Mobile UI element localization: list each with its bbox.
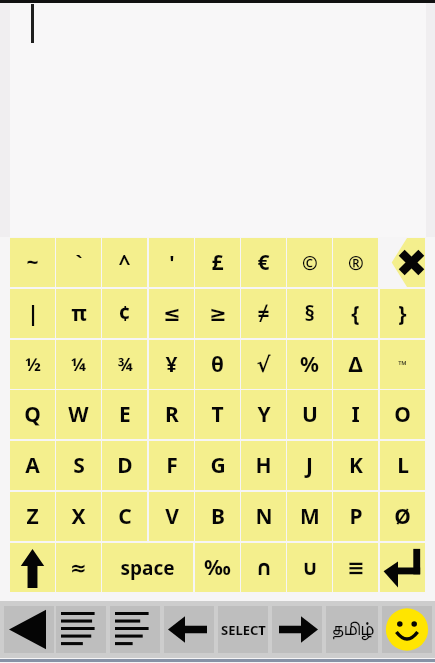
staticText: ∪ bbox=[301, 556, 319, 580]
staticText: ™ bbox=[398, 357, 407, 372]
button[interactable]: ¾ bbox=[102, 340, 147, 389]
button[interactable]: B bbox=[195, 492, 240, 541]
button[interactable]: ™ bbox=[380, 340, 425, 389]
button[interactable]: S bbox=[56, 441, 101, 490]
button[interactable]: ∪ bbox=[287, 543, 332, 592]
button[interactable]: Previous bbox=[4, 606, 54, 653]
button[interactable]: ¼ bbox=[56, 340, 101, 389]
button[interactable]: U bbox=[287, 390, 332, 439]
staticText: € bbox=[257, 248, 270, 277]
staticText: π bbox=[71, 299, 87, 328]
staticText: J bbox=[306, 451, 313, 480]
button[interactable]: Justify bbox=[56, 606, 106, 653]
staticText: ¾ bbox=[117, 352, 133, 377]
button[interactable]: V bbox=[149, 492, 194, 541]
button[interactable]: | bbox=[10, 289, 55, 338]
staticText: M bbox=[300, 502, 320, 531]
button[interactable]: T bbox=[195, 390, 240, 439]
staticText: { bbox=[351, 299, 360, 328]
staticText: தமிழ் bbox=[331, 620, 374, 639]
button[interactable]: } bbox=[380, 289, 425, 338]
button[interactable]: { bbox=[333, 289, 378, 338]
staticText: ' bbox=[169, 249, 175, 276]
button[interactable]: Tamil bbox=[326, 606, 378, 653]
button[interactable]: Align left bbox=[110, 606, 160, 653]
button[interactable]: K bbox=[333, 441, 378, 490]
staticText: D bbox=[117, 451, 133, 480]
button[interactable]: ` bbox=[56, 238, 101, 287]
button[interactable]: © bbox=[287, 238, 332, 287]
button[interactable]: ‰ bbox=[195, 543, 240, 592]
button[interactable]: P bbox=[333, 492, 378, 541]
button[interactable]: Move right bbox=[272, 606, 322, 653]
staticText: % bbox=[300, 350, 319, 379]
button[interactable]: ' bbox=[149, 238, 194, 287]
button[interactable]: ¥ bbox=[149, 340, 194, 389]
button[interactable]: θ bbox=[195, 340, 240, 389]
button[interactable]: € bbox=[241, 238, 286, 287]
staticText: ~ bbox=[26, 248, 39, 277]
button[interactable]: W bbox=[56, 390, 101, 439]
staticText: space bbox=[120, 555, 175, 581]
button[interactable]: § bbox=[287, 289, 332, 338]
staticText: ¼ bbox=[71, 352, 86, 377]
staticText: Z bbox=[26, 502, 39, 531]
button[interactable]: Select bbox=[218, 606, 268, 653]
button[interactable]: J bbox=[287, 441, 332, 490]
button[interactable]: ® bbox=[333, 238, 378, 287]
button[interactable]: ~ bbox=[10, 238, 55, 287]
button[interactable]: M bbox=[287, 492, 332, 541]
button[interactable]: X bbox=[56, 492, 101, 541]
button[interactable]: ^ bbox=[102, 238, 147, 287]
button[interactable]: F bbox=[149, 441, 194, 490]
button[interactable]: Move left bbox=[164, 606, 214, 653]
button[interactable]: % bbox=[287, 340, 332, 389]
button[interactable]: Δ bbox=[333, 340, 378, 389]
button[interactable]: L bbox=[380, 441, 425, 490]
staticText: ^ bbox=[118, 248, 131, 277]
button[interactable]: ≥ bbox=[195, 289, 240, 338]
button[interactable]: I bbox=[333, 390, 378, 439]
button[interactable]: ≠ bbox=[241, 289, 286, 338]
button[interactable]: Ø bbox=[380, 492, 425, 541]
button[interactable]: ≡ bbox=[333, 543, 378, 592]
button[interactable]: Shift bbox=[10, 543, 55, 592]
staticText: SELECT bbox=[221, 621, 266, 639]
button[interactable]: N bbox=[241, 492, 286, 541]
staticText: P bbox=[349, 502, 363, 531]
staticText: U bbox=[302, 400, 318, 429]
button[interactable]: D bbox=[102, 441, 147, 490]
button[interactable]: Q bbox=[10, 390, 55, 439]
button[interactable]: C bbox=[102, 492, 147, 541]
staticText: © bbox=[302, 250, 318, 276]
button[interactable]: Emoji bbox=[382, 606, 432, 653]
button[interactable]: ≤ bbox=[149, 289, 194, 338]
staticText: ¥ bbox=[165, 350, 178, 379]
staticText: R bbox=[165, 400, 179, 429]
button[interactable]: R bbox=[149, 390, 194, 439]
button[interactable]: £ bbox=[195, 238, 240, 287]
staticText: Q bbox=[24, 400, 41, 429]
staticText: ¢ bbox=[118, 299, 131, 328]
button[interactable]: Y bbox=[241, 390, 286, 439]
button[interactable]: ∩ bbox=[241, 543, 286, 592]
staticText: } bbox=[398, 299, 407, 328]
staticText: | bbox=[27, 299, 39, 328]
staticText: ≡ bbox=[347, 556, 365, 580]
button[interactable]: A bbox=[10, 441, 55, 490]
button[interactable]: E bbox=[102, 390, 147, 439]
button[interactable]: Backspace bbox=[380, 238, 425, 287]
staticText: Δ bbox=[348, 350, 363, 379]
button[interactable]: space bbox=[102, 543, 193, 592]
staticText: √ bbox=[256, 353, 271, 377]
button[interactable]: π bbox=[56, 289, 101, 338]
button[interactable]: Z bbox=[10, 492, 55, 541]
button[interactable]: O bbox=[380, 390, 425, 439]
button[interactable]: Enter bbox=[380, 543, 425, 592]
button[interactable]: G bbox=[195, 441, 240, 490]
button[interactable]: H bbox=[241, 441, 286, 490]
button[interactable]: ½ bbox=[10, 340, 55, 389]
button[interactable]: ¢ bbox=[102, 289, 147, 338]
button[interactable]: √ bbox=[241, 340, 286, 389]
button[interactable]: ≈ bbox=[56, 543, 101, 592]
